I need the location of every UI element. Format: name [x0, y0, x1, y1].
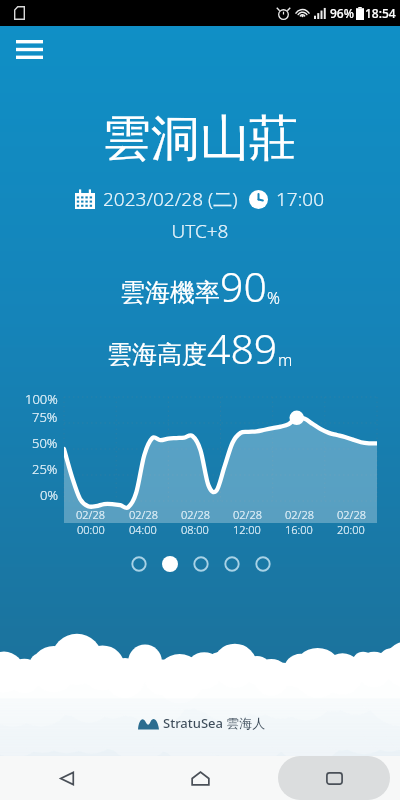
staticText: 75%: [32, 408, 58, 426]
button[interactable]: Page 4: [216, 548, 247, 579]
staticText: UTC+8: [0, 218, 400, 244]
staticText: 02/28: [129, 507, 158, 522]
staticText: 96%: [330, 5, 354, 21]
staticText: 25%: [32, 460, 58, 478]
staticText: 雲海高度: [107, 339, 207, 370]
staticText: 20:00: [337, 522, 365, 537]
staticText: 02/28: [337, 507, 366, 522]
staticText: 02/28: [233, 507, 262, 522]
staticText: 90: [220, 258, 267, 314]
staticText: %: [267, 287, 280, 309]
button[interactable]: Page 3: [185, 548, 216, 579]
staticText: 17:00: [276, 186, 325, 212]
staticText: StratuSea 雲海人: [163, 714, 266, 732]
staticText: 雲洞山莊: [0, 108, 400, 170]
button[interactable]: Menu: [6, 26, 52, 72]
staticText: 100%: [25, 390, 58, 404]
staticText: 2023/02/28 (二): [103, 186, 238, 212]
staticText: 489: [207, 320, 278, 376]
staticText: 18:54: [365, 5, 396, 21]
staticText: 50%: [32, 434, 58, 452]
staticText: 16:00: [285, 522, 313, 537]
button[interactable]: Page 2: [154, 548, 185, 579]
staticText: 12:00: [233, 522, 261, 537]
staticText: 0%: [40, 486, 58, 504]
staticText: 02/28: [285, 507, 314, 522]
staticText: 00:00: [77, 522, 105, 537]
button[interactable]: Page 1: [123, 548, 154, 579]
staticText: m: [278, 349, 293, 371]
button[interactable]: Home: [134, 756, 267, 800]
button[interactable]: Back: [0, 756, 134, 800]
staticText: 04:00: [129, 522, 157, 537]
button[interactable]: Page 5: [247, 548, 278, 579]
staticText: 08:00: [181, 522, 209, 537]
staticText: 02/28: [181, 507, 210, 522]
staticText: 02/28: [76, 507, 105, 522]
staticText: 雲海機率: [120, 277, 220, 308]
button[interactable]: Recents: [267, 756, 400, 800]
